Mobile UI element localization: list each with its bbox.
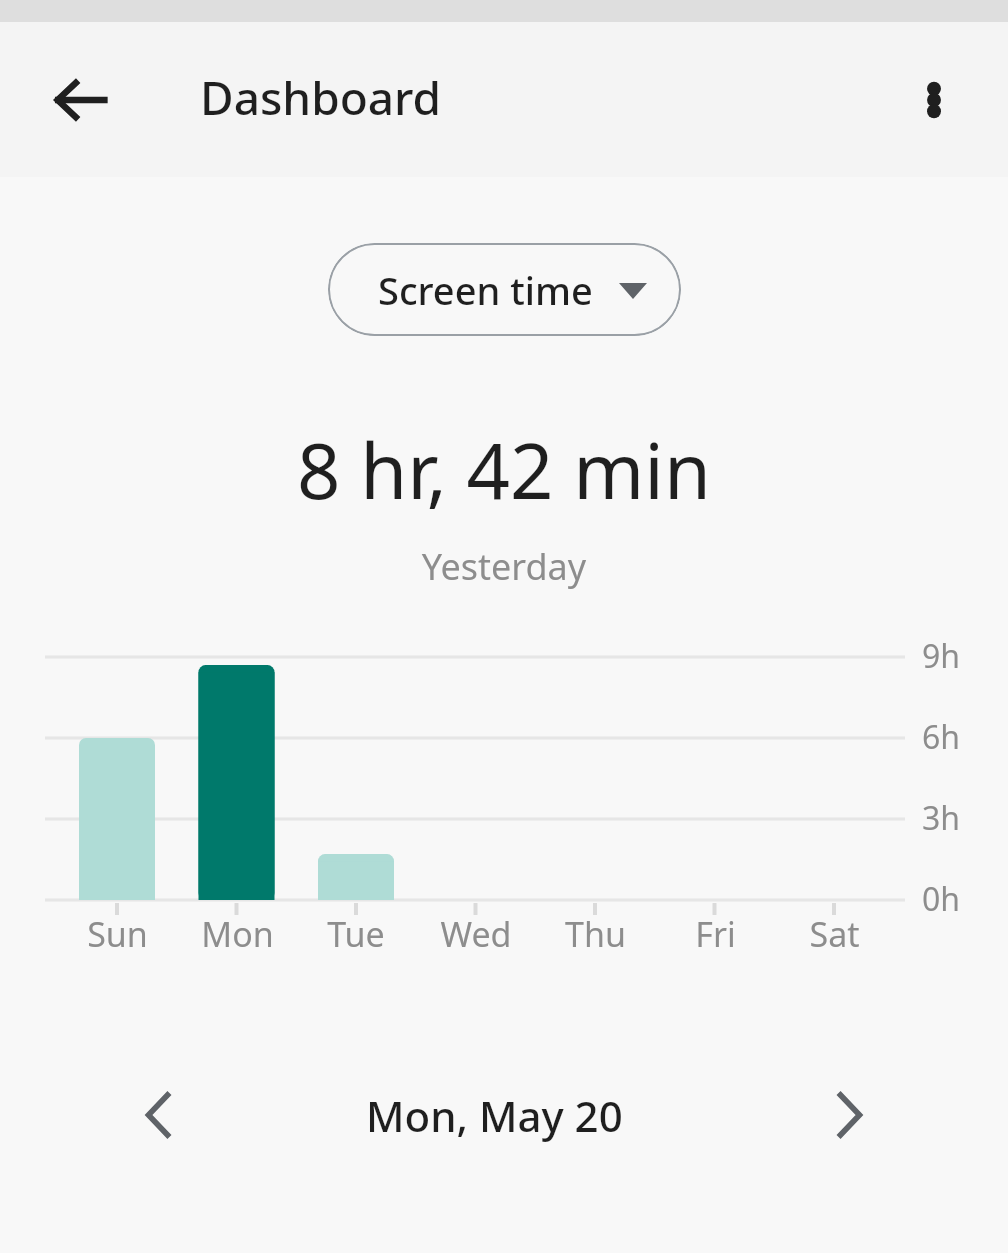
staticText: 3h bbox=[922, 796, 961, 840]
staticText: Screen time bbox=[378, 264, 593, 316]
staticText: Yesterday bbox=[0, 542, 1008, 591]
staticText: Mon, May 20 bbox=[366, 1087, 623, 1144]
staticText: Mon bbox=[201, 911, 274, 957]
button[interactable]: Previous day bbox=[122, 1079, 194, 1151]
staticText: Sat bbox=[809, 911, 860, 957]
staticText: 9h bbox=[922, 634, 961, 678]
staticText: Wed bbox=[440, 911, 512, 957]
staticText: Sun bbox=[87, 911, 148, 957]
button[interactable]: Back bbox=[44, 64, 116, 136]
button[interactable]: Next day bbox=[814, 1079, 886, 1151]
staticText: Dashboard bbox=[200, 66, 442, 129]
staticText: 6h bbox=[922, 715, 961, 759]
staticText: 0h bbox=[922, 877, 961, 921]
staticText: Fri bbox=[695, 911, 736, 957]
staticText: 8 hr, 42 min bbox=[0, 418, 1008, 522]
staticText: Thu bbox=[565, 911, 626, 957]
button[interactable]: More options bbox=[898, 64, 970, 136]
button[interactable]: Screen time bbox=[328, 243, 681, 336]
staticText: Tue bbox=[327, 911, 385, 957]
